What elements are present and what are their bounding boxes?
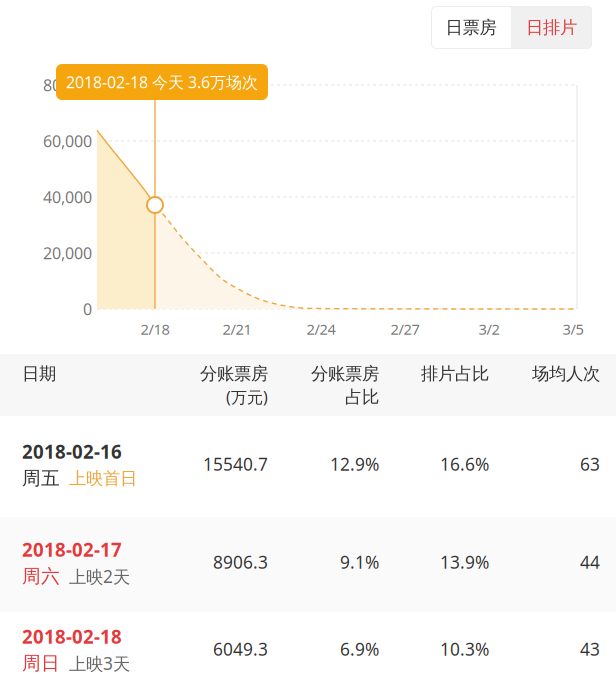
staticText: 2/24 [306, 319, 335, 339]
staticText: 6.9% [340, 637, 379, 660]
staticText: 10.3% [440, 637, 489, 660]
staticText: 9.1% [340, 550, 379, 573]
staticText: 15540.7 [203, 452, 268, 475]
staticText: 44 [580, 550, 600, 573]
staticText: 日票房 [445, 17, 496, 38]
button[interactable]: 2018-02-16 [0, 416, 616, 517]
staticText: 43 [580, 637, 600, 660]
staticText: 2/21 [222, 319, 251, 339]
staticText: 2/18 [140, 319, 169, 339]
staticText: 上映首日 [69, 468, 137, 489]
staticText: 3/2 [478, 319, 499, 339]
staticText: 2018-02-16 [22, 439, 122, 464]
staticText: 0 [83, 298, 92, 320]
staticText: 日期 [22, 363, 56, 384]
staticText: 63 [580, 452, 600, 475]
button[interactable]: 2018-02-17 [0, 517, 616, 612]
button[interactable]: 日排片 [511, 6, 592, 49]
staticText: 2018-02-17 [22, 537, 122, 562]
staticText: 场均人次 [532, 363, 600, 384]
staticText: 40,000 [43, 186, 92, 208]
button[interactable]: 日票房 [431, 6, 511, 49]
staticText: 2/27 [390, 319, 419, 339]
staticText: 2018-02-18 今天 3.6万场次 [66, 71, 258, 93]
staticText: 分账票房 [200, 363, 268, 384]
staticText: (万元) [226, 386, 268, 407]
staticText: 周五 [22, 467, 60, 490]
staticText: 60,000 [43, 130, 92, 152]
staticText: 8906.3 [213, 550, 268, 573]
staticText: 周日 [22, 652, 60, 675]
staticText: 占比 [345, 386, 379, 408]
staticText: 80,000 [43, 74, 92, 96]
staticText: 上映3天 [69, 652, 130, 675]
staticText: 周六 [22, 565, 60, 588]
staticText: 20,000 [43, 242, 92, 264]
staticText: 2018-02-18 [22, 624, 122, 649]
staticText: 上映2天 [69, 565, 130, 588]
staticText: 13.9% [440, 550, 489, 573]
staticText: 6049.3 [213, 637, 268, 660]
staticText: 16.6% [440, 452, 489, 475]
staticText: 排片占比 [421, 363, 489, 384]
staticText: 分账票房 [311, 363, 379, 384]
button[interactable]: 2018-02-18 [0, 612, 616, 691]
staticText: 日排片 [526, 17, 577, 38]
staticText: 12.9% [330, 452, 379, 475]
staticText: 3/5 [562, 319, 583, 339]
